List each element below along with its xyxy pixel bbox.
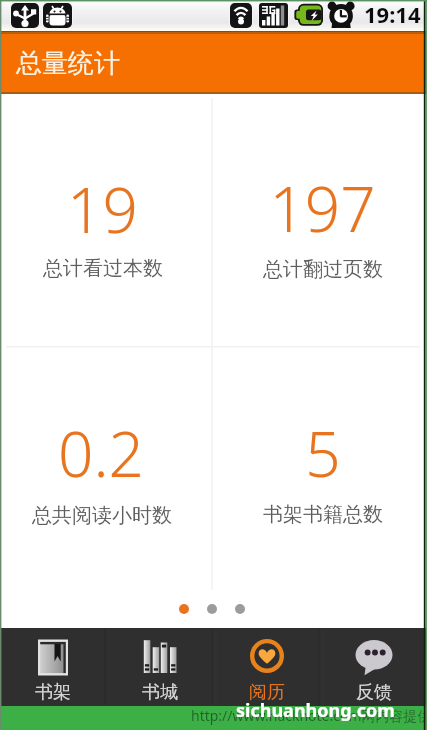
staticText: 阅历 [249,681,285,704]
button[interactable]: Feedback [320,628,427,706]
staticText: 总计翻过页数 [263,257,383,282]
button[interactable]: Bookshelf [0,628,106,706]
button[interactable]: Reading history [213,628,320,706]
staticText: 总量统计 [16,47,120,80]
other: Reading history [247,637,287,675]
staticText: 0.2 [58,411,144,495]
staticText: 19 [67,167,138,251]
staticText: sichuanhong.com [236,698,395,723]
staticText: 书城 [142,681,178,704]
staticText: 反馈 [356,681,392,704]
staticText: http://www.hacknote.com网内容提供 [191,706,427,725]
staticText: 19:14 [364,0,421,29]
staticText: 总共阅读小时数 [32,503,172,528]
staticText: 总计看过本数 [43,256,163,281]
staticText: 197 [269,166,376,250]
other: Feedback [354,637,394,675]
other: Bookshelf [33,637,73,675]
staticText: 书架书籍总数 [263,502,383,527]
staticText: 5 [305,411,341,495]
other: Book store [140,637,180,675]
button[interactable]: Book store [106,628,213,706]
staticText: 书架 [35,681,71,704]
